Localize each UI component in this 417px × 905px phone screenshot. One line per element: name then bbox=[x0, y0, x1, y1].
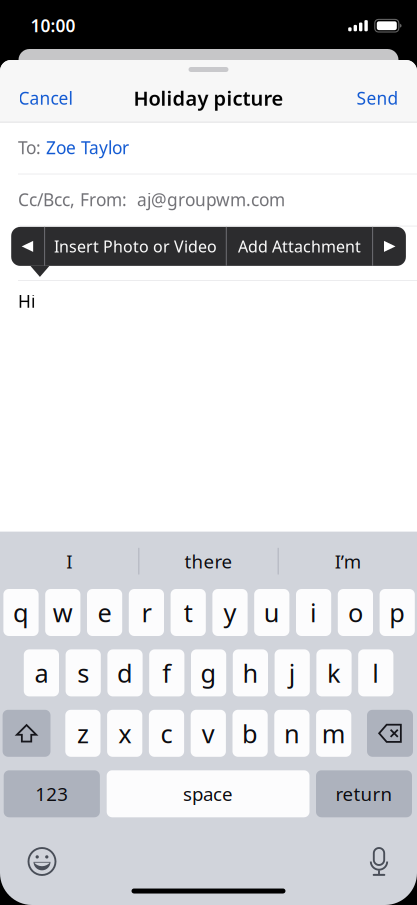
staticText: j bbox=[289, 656, 296, 690]
button[interactable]: Next bbox=[373, 227, 406, 266]
staticText: To: bbox=[18, 136, 46, 159]
button[interactable]: y bbox=[212, 589, 248, 636]
staticText: p bbox=[389, 596, 405, 629]
button[interactable]: q bbox=[3, 589, 39, 636]
staticText: Zoe Taylor bbox=[46, 136, 129, 159]
staticText: I’m bbox=[335, 549, 361, 574]
button[interactable]: t bbox=[171, 589, 206, 636]
button[interactable]: h bbox=[233, 649, 268, 696]
staticText: m bbox=[322, 716, 346, 750]
staticText: b bbox=[242, 716, 258, 750]
button[interactable]: e bbox=[87, 589, 122, 636]
button[interactable]: w bbox=[45, 589, 80, 636]
button[interactable]: u bbox=[254, 589, 289, 636]
staticText: n bbox=[284, 716, 300, 750]
staticText: g bbox=[201, 656, 217, 690]
button[interactable]: d bbox=[107, 649, 143, 696]
button[interactable]: Insert Photo or Video bbox=[45, 227, 226, 266]
staticText: Add Attachment bbox=[238, 236, 361, 257]
button[interactable]: j bbox=[275, 649, 310, 696]
button[interactable]: i bbox=[296, 589, 331, 636]
button[interactable]: Emoji bbox=[15, 839, 69, 883]
button[interactable]: p bbox=[380, 589, 415, 636]
staticText: o bbox=[348, 596, 363, 629]
button[interactable]: Add Attachment bbox=[227, 227, 372, 266]
staticText: q bbox=[13, 596, 29, 629]
button[interactable]: 123 bbox=[4, 770, 100, 817]
button[interactable]: Previous bbox=[11, 227, 44, 266]
staticText: i bbox=[310, 596, 317, 629]
staticText: Insert Photo or Video bbox=[54, 236, 217, 257]
staticText: t bbox=[184, 596, 193, 629]
button[interactable]: b bbox=[232, 710, 268, 757]
button[interactable]: I bbox=[0, 548, 138, 574]
staticText: f bbox=[162, 656, 171, 690]
button[interactable]: Zoe Taylor bbox=[46, 136, 129, 159]
staticText: c bbox=[160, 716, 172, 750]
staticText: return bbox=[335, 781, 392, 806]
button[interactable]: a bbox=[24, 649, 59, 696]
button[interactable]: z bbox=[65, 710, 100, 757]
staticText: l bbox=[372, 656, 379, 690]
button[interactable]: Delete bbox=[367, 710, 413, 757]
button[interactable]: g bbox=[191, 649, 226, 696]
staticText: w bbox=[53, 596, 73, 629]
staticText: Hi bbox=[18, 289, 35, 312]
staticText: u bbox=[264, 596, 280, 629]
staticText: v bbox=[202, 716, 215, 750]
button[interactable]: o bbox=[338, 589, 373, 636]
staticText: r bbox=[141, 596, 151, 629]
staticText: space bbox=[183, 781, 233, 806]
button[interactable]: x bbox=[107, 710, 142, 757]
button[interactable]: l bbox=[358, 649, 393, 696]
button[interactable]: space bbox=[107, 770, 309, 817]
staticText: x bbox=[118, 716, 131, 750]
button[interactable]: Cancel bbox=[0, 76, 91, 120]
staticText: e bbox=[98, 596, 112, 629]
staticText: 123 bbox=[35, 781, 68, 806]
button[interactable]: Dictate bbox=[352, 839, 406, 883]
button[interactable]: Shift bbox=[3, 710, 50, 757]
button[interactable]: I’m bbox=[279, 548, 417, 574]
staticText: I bbox=[66, 549, 72, 574]
button[interactable]: r bbox=[129, 589, 164, 636]
staticText: d bbox=[117, 656, 133, 690]
button[interactable]: there bbox=[139, 548, 278, 574]
button[interactable]: n bbox=[274, 710, 309, 757]
button[interactable]: s bbox=[66, 649, 101, 696]
button[interactable]: v bbox=[191, 710, 226, 757]
staticText: s bbox=[77, 656, 89, 690]
button[interactable]: m bbox=[316, 710, 351, 757]
button[interactable]: f bbox=[149, 649, 184, 696]
staticText: 10:00 bbox=[30, 14, 75, 37]
staticText: a bbox=[34, 656, 48, 690]
staticText: z bbox=[77, 716, 89, 750]
staticText: Holiday picture bbox=[133, 85, 283, 111]
staticText: there bbox=[184, 549, 232, 574]
button[interactable]: c bbox=[149, 710, 184, 757]
staticText: y bbox=[223, 596, 236, 629]
staticText: h bbox=[242, 656, 258, 690]
button[interactable]: return bbox=[316, 770, 412, 817]
staticText: Cc/Bcc, From: aj@groupwm.com bbox=[18, 188, 285, 211]
button[interactable]: Send bbox=[338, 76, 417, 120]
staticText: Send bbox=[356, 86, 398, 109]
staticText: Cancel bbox=[18, 86, 72, 109]
staticText: k bbox=[327, 656, 341, 690]
button[interactable]: k bbox=[316, 649, 352, 696]
